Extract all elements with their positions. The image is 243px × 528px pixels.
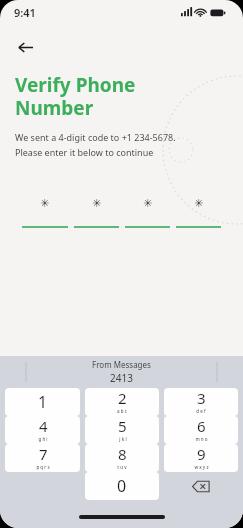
- staticText: w x y z: [194, 464, 209, 470]
- staticText: Verify Phone Number: [15, 72, 136, 121]
- button[interactable]: 5: [85, 416, 159, 444]
- staticText: d e f: [196, 408, 206, 414]
- button[interactable]: 4: [5, 416, 80, 444]
- staticText: p q r s: [36, 464, 50, 470]
- staticText: 9: [197, 444, 206, 464]
- staticText: ✳: [143, 197, 153, 210]
- staticText: 0: [117, 475, 127, 497]
- staticText: t u v: [117, 464, 127, 470]
- staticText: g h i: [38, 436, 48, 442]
- staticText: 7: [39, 444, 48, 464]
- staticText: 6: [197, 416, 206, 436]
- staticText: 1: [38, 391, 48, 413]
- button[interactable]: 1: [5, 388, 80, 416]
- staticText: From Messages: [92, 359, 151, 370]
- staticText: We sent a 4-digit code to +1 234-5678. P…: [15, 131, 176, 158]
- staticText: a b c: [117, 408, 127, 414]
- button[interactable]: From Messages: [0, 356, 243, 388]
- staticText: 2413: [110, 371, 133, 385]
- staticText: ✳: [92, 197, 102, 210]
- button[interactable]: 6: [164, 416, 238, 444]
- button[interactable]: ✳: [125, 192, 170, 228]
- staticText: 8: [118, 444, 127, 464]
- button[interactable]: Back: [10, 32, 40, 62]
- staticText: ✳: [194, 197, 204, 210]
- staticText: j k l: [119, 436, 127, 442]
- button[interactable]: 2: [85, 388, 159, 416]
- staticText: 3: [197, 388, 206, 408]
- button[interactable]: 9: [164, 444, 238, 472]
- button[interactable]: 0: [85, 472, 159, 500]
- staticText: 2: [118, 388, 127, 408]
- button[interactable]: ✳: [176, 192, 221, 228]
- button[interactable]: Backspace: [164, 472, 238, 500]
- staticText: ✳: [40, 197, 50, 210]
- button[interactable]: ✳: [74, 192, 119, 228]
- button[interactable]: 3: [164, 388, 238, 416]
- button[interactable]: 8: [85, 444, 159, 472]
- staticText: 4: [39, 416, 48, 436]
- staticText: 9:41: [14, 5, 36, 20]
- staticText: 5: [118, 416, 127, 436]
- button[interactable]: ✳: [22, 192, 68, 228]
- staticText: m n o: [195, 436, 208, 442]
- button[interactable]: 7: [5, 444, 80, 472]
